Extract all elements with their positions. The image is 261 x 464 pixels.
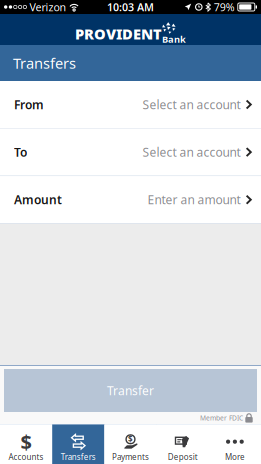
staticText: 10:03 AM [107,0,154,14]
button[interactable]: Transfer [4,369,257,412]
staticText: Transfer [107,382,154,398]
button[interactable]: Transfers [52,424,104,464]
staticText: Bank [162,33,186,45]
staticText: Select an account [142,144,240,160]
staticText: Select an account [142,96,240,112]
staticText: From [14,96,44,112]
button[interactable]: $ [104,424,157,464]
staticText: To [14,144,27,160]
staticText: Member FDIC [200,414,243,422]
staticText: Enter an amount [147,192,240,208]
button[interactable]: Deposit [157,424,209,464]
staticText: Payments [112,452,149,462]
staticText: Amount [14,192,62,208]
staticText: Deposit [168,452,198,462]
staticText: $ [21,428,32,455]
button[interactable]: More [209,424,261,464]
button[interactable]: $ [0,424,52,464]
button[interactable]: To [0,129,261,176]
staticText: Transfers [13,53,76,73]
button[interactable]: Amount [0,176,261,223]
staticText: Transfers [61,452,96,462]
staticText: 79% [214,0,235,14]
staticText: PROVIDENT [75,24,162,43]
staticText: $ [128,434,133,444]
button[interactable]: From [0,81,261,128]
staticText: More [225,452,245,462]
staticText: Accounts [9,452,44,462]
staticText: Verizon [30,0,67,14]
